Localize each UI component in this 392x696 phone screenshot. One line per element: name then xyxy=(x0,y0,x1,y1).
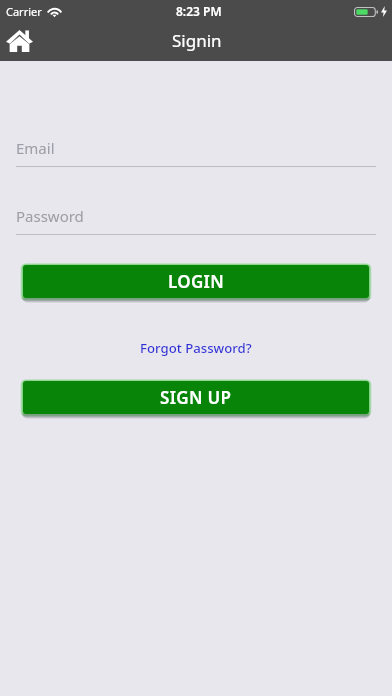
button[interactable]: SIGN UP xyxy=(23,381,369,414)
staticText: 8:23 PM xyxy=(176,3,222,19)
button[interactable]: LOGIN xyxy=(23,265,369,298)
button[interactable]: Home xyxy=(0,22,44,61)
staticText: Carrier xyxy=(6,4,42,19)
staticText: Password xyxy=(16,206,84,226)
button[interactable]: Forgot Password? xyxy=(130,336,262,360)
staticText: Email xyxy=(16,138,55,158)
staticText: SIGN UP xyxy=(160,386,232,409)
staticText: LOGIN xyxy=(168,270,224,293)
staticText: Signin xyxy=(172,29,222,52)
staticText: Forgot Password? xyxy=(140,339,252,357)
